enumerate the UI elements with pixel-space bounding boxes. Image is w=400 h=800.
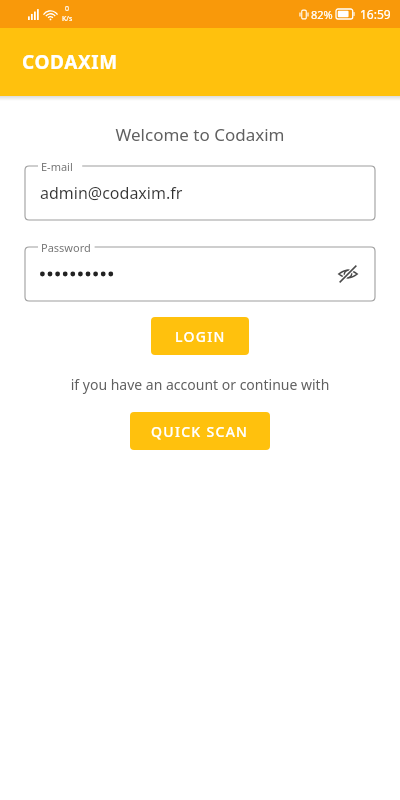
staticText: E-mail (41, 159, 73, 174)
staticText: 82% (311, 7, 333, 22)
button[interactable]: Show password (335, 261, 361, 287)
staticText: 0 (65, 4, 70, 14)
staticText: Password (41, 240, 91, 255)
staticText: Welcome to Codaxim (0, 123, 400, 146)
button[interactable]: LOGIN (151, 317, 249, 355)
staticText: CODAXIM (22, 49, 118, 75)
staticText: if you have an account or continue with (0, 375, 400, 394)
staticText: 16:59 (360, 6, 391, 22)
staticText: K/s (62, 14, 73, 24)
button[interactable]: QUICK SCAN (130, 412, 270, 450)
staticText: QUICK SCAN (151, 422, 249, 441)
staticText: admin@codaxim.fr (40, 182, 183, 204)
staticText: LOGIN (175, 327, 226, 346)
